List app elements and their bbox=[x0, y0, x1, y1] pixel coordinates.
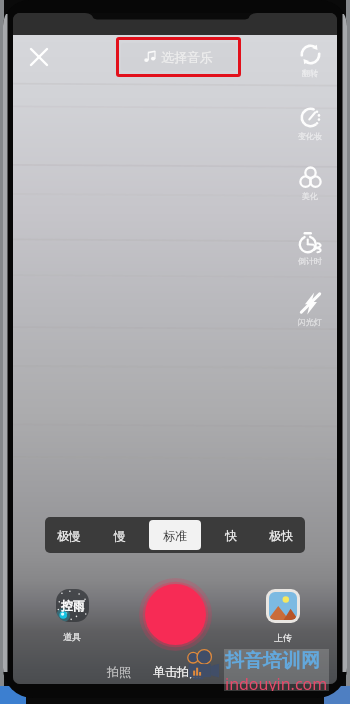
staticText: 极快 bbox=[269, 528, 293, 543]
button[interactable]: Flip camera bbox=[283, 43, 337, 78]
staticText: 美化 bbox=[302, 191, 318, 201]
staticText: 倒计时 bbox=[298, 256, 322, 266]
button[interactable]: 拍照 bbox=[102, 659, 136, 684]
staticText: 道具 bbox=[63, 631, 81, 642]
staticText: 单击拍照 bbox=[153, 664, 201, 679]
staticText: 极慢 bbox=[57, 528, 81, 543]
button[interactable]: 上传 bbox=[265, 589, 301, 643]
button[interactable]: 极快 bbox=[260, 520, 302, 550]
button[interactable]: 快 bbox=[216, 520, 246, 550]
button[interactable]: 单击拍照 bbox=[148, 659, 206, 684]
button[interactable]: 选择音乐 bbox=[116, 37, 241, 77]
button[interactable]: 标准 bbox=[149, 520, 201, 550]
staticText: 拍照 bbox=[107, 664, 131, 679]
button[interactable]: Close bbox=[24, 42, 53, 71]
staticText: 变化妆 bbox=[298, 131, 322, 141]
staticText: 上传 bbox=[274, 632, 292, 643]
staticText: 翻转 bbox=[302, 68, 318, 78]
button[interactable]: 极慢 bbox=[48, 520, 90, 550]
staticText: 标准 bbox=[163, 528, 187, 543]
button[interactable]: 控雨 bbox=[53, 589, 91, 642]
staticText: 快 bbox=[225, 528, 237, 543]
staticText: 闪光灯 bbox=[298, 317, 322, 327]
staticText: indouyin.com bbox=[225, 673, 328, 691]
staticText: 控雨 bbox=[61, 598, 85, 613]
staticText: 选择音乐 bbox=[161, 49, 213, 65]
button[interactable]: Record bbox=[145, 584, 206, 645]
button[interactable]: Speed bbox=[283, 106, 337, 141]
button[interactable]: 慢 bbox=[105, 520, 135, 550]
staticText: 抖音培训网 bbox=[225, 649, 320, 673]
button[interactable]: Flash bbox=[283, 292, 337, 327]
button[interactable]: Countdown bbox=[283, 231, 337, 266]
button[interactable]: Beautify bbox=[283, 166, 337, 201]
staticText: 慢 bbox=[114, 528, 126, 543]
